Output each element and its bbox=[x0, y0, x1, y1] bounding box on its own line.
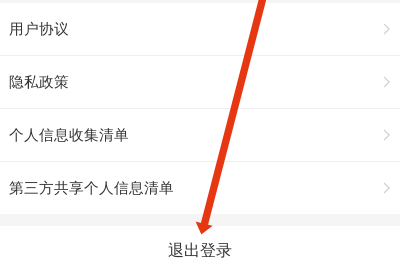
button[interactable]: 退出登录 bbox=[0, 226, 400, 271]
button[interactable]: 个人信息收集清单 bbox=[0, 109, 400, 161]
button[interactable]: 用户协议 bbox=[0, 3, 400, 55]
button[interactable]: 第三方共享个人信息清单 bbox=[0, 162, 400, 214]
staticText: 退出登录 bbox=[168, 241, 232, 260]
staticText: 隐私政策 bbox=[9, 73, 69, 91]
staticText: 个人信息收集清单 bbox=[9, 126, 129, 144]
button[interactable]: 隐私政策 bbox=[0, 56, 400, 108]
staticText: 用户协议 bbox=[9, 20, 69, 38]
staticText: 第三方共享个人信息清单 bbox=[9, 179, 174, 197]
